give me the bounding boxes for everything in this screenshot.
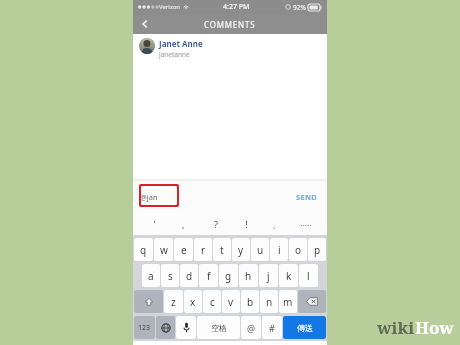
staticText: 。 (181, 219, 190, 230)
staticText: o (295, 243, 302, 257)
staticText: 、 (272, 219, 281, 230)
staticText: n (266, 295, 273, 309)
button[interactable]: f (199, 264, 218, 287)
button[interactable]: p (308, 238, 326, 261)
button[interactable]: i (270, 238, 288, 261)
button[interactable]: l (299, 264, 318, 287)
staticText: h (245, 269, 252, 283)
button[interactable]: x (184, 290, 202, 313)
staticText: t (220, 243, 224, 257)
staticText: b (247, 295, 254, 309)
button[interactable]: …… (291, 213, 321, 235)
button[interactable]: m (279, 290, 297, 313)
button[interactable]: ! (231, 213, 261, 235)
staticText: a (148, 269, 154, 283)
staticText: u (257, 243, 264, 257)
button[interactable]: 空格 (197, 316, 240, 339)
button[interactable]: s (161, 264, 179, 287)
staticText: ' (153, 218, 156, 230)
staticText: d (186, 269, 193, 283)
staticText: c (210, 295, 215, 309)
staticText: Janet Anne (159, 38, 203, 49)
button[interactable]: o (289, 238, 307, 261)
staticText: SEND (296, 192, 318, 202)
staticText: ! (245, 218, 248, 230)
button[interactable]: h (239, 264, 258, 287)
button[interactable]: @ (241, 316, 261, 339)
staticText: q (140, 243, 147, 257)
button[interactable]: # (262, 316, 282, 339)
staticText: COMMENTS (204, 19, 256, 30)
staticText: # (269, 322, 275, 334)
button[interactable]: 傳送 (283, 316, 326, 339)
staticText: 傳送 (297, 323, 313, 333)
button[interactable]: Back (136, 15, 154, 33)
button[interactable]: z (164, 290, 183, 313)
staticText: r (201, 243, 206, 257)
button[interactable]: Voice input (176, 316, 196, 339)
staticText: i (278, 243, 281, 257)
staticText: j (267, 269, 270, 283)
button[interactable]: g (219, 264, 238, 287)
button[interactable]: 123 (134, 316, 155, 339)
staticText: y (238, 243, 244, 257)
staticText: Verizon (159, 3, 181, 11)
button[interactable]: Shift (134, 290, 163, 313)
button[interactable]: r (194, 238, 212, 261)
button[interactable]: t (213, 238, 231, 261)
staticText: g (225, 269, 232, 283)
button[interactable]: 。 (170, 213, 201, 235)
staticText: f (207, 269, 211, 283)
staticText: 123 (138, 323, 151, 333)
staticText: l (307, 269, 310, 283)
staticText: janetanne (159, 50, 190, 59)
button[interactable]: d (180, 264, 198, 287)
button[interactable]: u (251, 238, 269, 261)
staticText: w (160, 243, 168, 257)
staticText: z (171, 295, 176, 309)
button[interactable]: a (142, 264, 160, 287)
staticText: 92% (293, 3, 306, 12)
button[interactable]: ' (139, 213, 170, 235)
staticText: k (286, 269, 292, 283)
button[interactable]: Change keyboard (156, 316, 175, 339)
staticText: v (228, 295, 234, 309)
staticText: wiki (377, 316, 415, 339)
staticText: …… (300, 219, 312, 229)
button[interactable]: Janet Anne (139, 38, 321, 59)
staticText: 空格 (211, 323, 227, 333)
button[interactable]: 、 (261, 213, 291, 235)
button[interactable]: c (203, 290, 221, 313)
staticText: p (314, 243, 321, 257)
staticText: @ (247, 322, 256, 334)
button[interactable]: n (260, 290, 278, 313)
button[interactable]: v (222, 290, 240, 313)
button[interactable]: SEND (294, 190, 320, 204)
staticText: s (168, 269, 173, 283)
staticText: m (283, 295, 293, 309)
staticText: How (415, 316, 454, 339)
button[interactable]: e (174, 238, 193, 261)
button[interactable]: w (154, 238, 173, 261)
button[interactable]: k (279, 264, 298, 287)
staticText: 4:27 PM (223, 2, 250, 12)
button[interactable]: ? (201, 213, 231, 235)
button[interactable]: j (259, 264, 278, 287)
button[interactable]: @jan (140, 192, 158, 202)
staticText: e (181, 243, 187, 257)
button[interactable]: b (241, 290, 259, 313)
staticText: ? (214, 218, 218, 230)
button[interactable]: q (134, 238, 153, 261)
staticText: x (190, 295, 196, 309)
button[interactable]: Backspace (298, 290, 326, 313)
button[interactable]: y (232, 238, 250, 261)
